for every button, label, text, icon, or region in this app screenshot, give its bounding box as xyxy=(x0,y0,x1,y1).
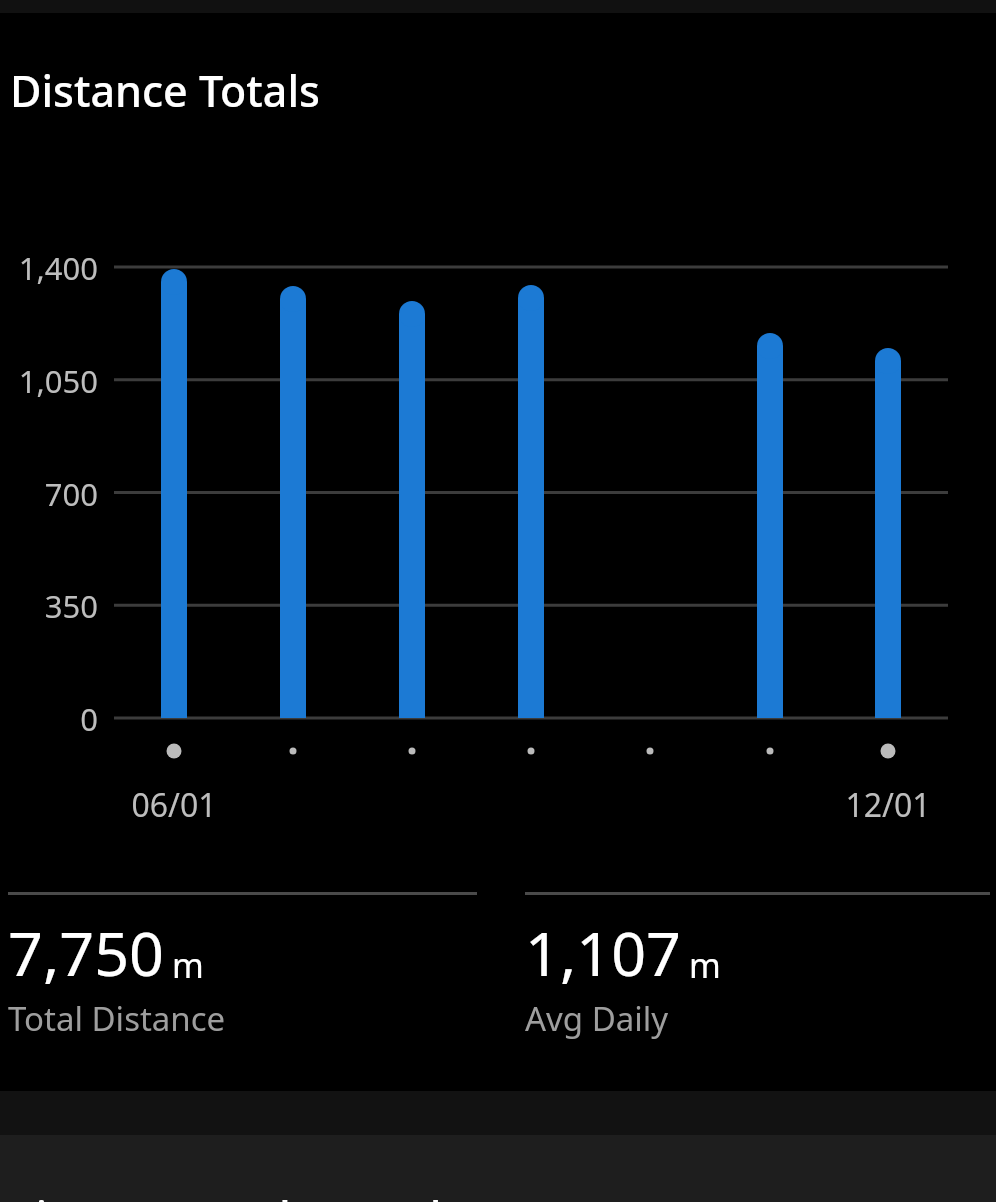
button[interactable]: 7,750 xyxy=(0,892,498,1041)
staticText: Avg Daily xyxy=(525,996,669,1041)
staticText: Total Distance xyxy=(8,996,226,1041)
staticText: 7,750 xyxy=(8,911,164,994)
button[interactable]: Day 7 distance xyxy=(846,267,930,778)
staticText: 1,400 xyxy=(0,247,98,289)
button[interactable]: Day 2 distance xyxy=(251,267,335,778)
staticText: 700 xyxy=(0,473,98,515)
button[interactable]: Distance Totals xyxy=(0,13,996,1091)
staticText: 12/01 xyxy=(818,783,958,827)
staticText: 06/01 xyxy=(104,783,244,827)
staticText: 0 xyxy=(0,698,98,740)
button[interactable]: Day 5 distance xyxy=(608,267,692,778)
staticText: m xyxy=(172,942,204,988)
staticText: 1,107 xyxy=(525,911,681,994)
staticText: 1,050 xyxy=(0,360,98,402)
button[interactable]: Day 4 distance xyxy=(489,267,573,778)
button[interactable]: View Personal Records xyxy=(0,1135,996,1202)
button[interactable]: Day 1 distance xyxy=(132,267,216,778)
staticText: 350 xyxy=(0,585,98,627)
button[interactable]: Day 3 distance xyxy=(370,267,454,778)
button[interactable]: 1,107 xyxy=(498,892,996,1041)
staticText: View Personal Records xyxy=(10,1187,462,1202)
button[interactable]: Day 6 distance xyxy=(728,267,812,778)
staticText: Distance Totals xyxy=(10,61,320,120)
staticText: m xyxy=(689,942,721,988)
